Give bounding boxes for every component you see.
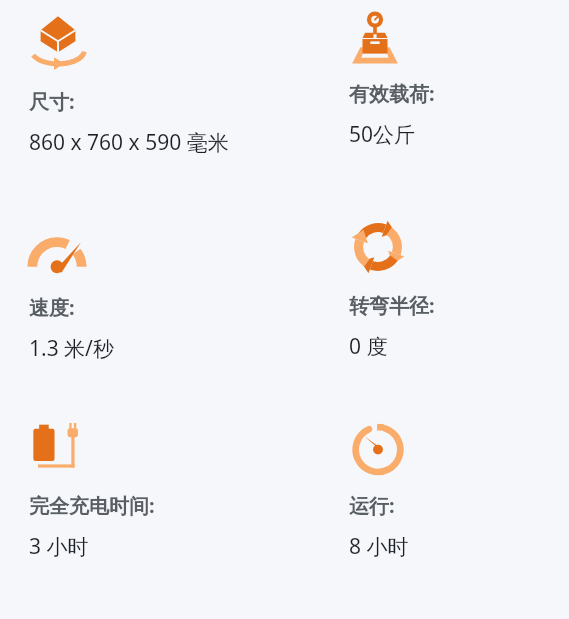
staticText: 3 小时 — [29, 532, 89, 561]
staticText: 尺寸: — [29, 88, 75, 115]
button[interactable]: Full charge time — [0, 400, 320, 561]
staticText: 0 度 — [349, 332, 388, 361]
button[interactable]: Turning radius — [320, 200, 569, 361]
other: Runtime — [349, 418, 407, 476]
other: Full charge time — [29, 418, 87, 476]
button[interactable]: Payload — [320, 0, 569, 149]
button[interactable]: Runtime — [320, 400, 569, 561]
staticText: 有效载荷: — [349, 80, 435, 107]
other: Speed — [29, 222, 85, 278]
other: Turning radius — [349, 218, 407, 276]
staticText: 1.3 米/秒 — [29, 334, 114, 363]
other: Payload — [349, 12, 401, 64]
staticText: 50公斤 — [349, 120, 416, 149]
staticText: 转弯半径: — [349, 292, 435, 319]
staticText: 完全充电时间: — [29, 492, 155, 519]
button[interactable]: Speed — [0, 200, 320, 363]
staticText: 运行: — [349, 492, 395, 519]
button[interactable]: Dimensions — [0, 0, 320, 157]
other: Dimensions — [29, 14, 87, 72]
staticText: 8 小时 — [349, 532, 409, 561]
staticText: 860 x 760 x 590 毫米 — [29, 128, 229, 157]
staticText: 速度: — [29, 294, 75, 321]
